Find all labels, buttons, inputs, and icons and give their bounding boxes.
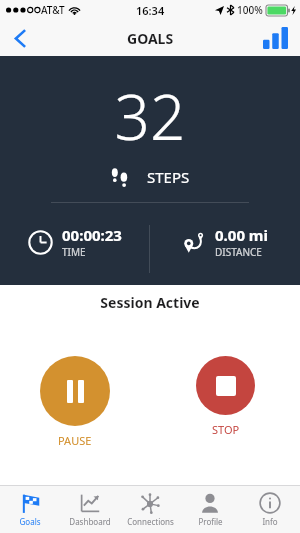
staticText: PAUSE: [58, 433, 92, 448]
staticText: 100%: [237, 3, 263, 17]
staticText: Goals: [19, 516, 41, 527]
staticText: Dashboard: [69, 516, 111, 527]
button[interactable]: Info: [240, 486, 300, 533]
button[interactable]: STOP: [192, 352, 259, 441]
button[interactable]: Profile: [180, 486, 240, 533]
button[interactable]: Dashboard: [60, 486, 120, 533]
staticText: STEPS: [147, 167, 190, 187]
staticText: DISTANCE: [215, 245, 262, 259]
staticText: Info: [262, 516, 278, 527]
staticText: 16:34: [136, 3, 165, 18]
staticText: AT&T: [41, 3, 65, 17]
button[interactable]: Connections: [120, 486, 180, 533]
staticText: GOALS: [127, 29, 174, 48]
button[interactable]: Statistics: [258, 21, 292, 55]
staticText: 00:00:23: [62, 225, 122, 245]
staticText: 0.00 mi: [215, 225, 268, 245]
staticText: TIME: [62, 245, 86, 259]
button[interactable]: Back: [0, 20, 40, 56]
staticText: STOP: [212, 422, 240, 437]
staticText: Connections: [127, 516, 174, 527]
button[interactable]: PAUSE: [36, 352, 114, 452]
staticText: 32: [0, 74, 300, 158]
staticText: Session Active: [0, 293, 300, 312]
staticText: Profile: [198, 516, 223, 527]
button[interactable]: Goals: [0, 486, 60, 533]
